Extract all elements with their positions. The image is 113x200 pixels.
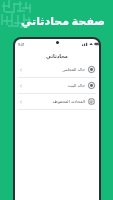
button[interactable]: حالة البيت (15, 78, 99, 93)
staticText: 9:41 (18, 42, 25, 47)
button[interactable]: المحادثة المحفوظة (15, 94, 99, 109)
staticText: حالة البيت (67, 83, 85, 89)
staticText: المحادثة المحفوظة (52, 99, 85, 105)
staticText: صفحة محادثاتي (20, 13, 105, 28)
staticText: حالة المجلس (62, 67, 85, 73)
button[interactable]: حالة المجلس (15, 62, 99, 77)
staticText: محادثاتي (46, 53, 68, 59)
